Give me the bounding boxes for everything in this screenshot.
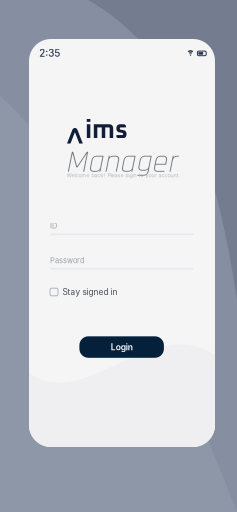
staticText: Manager bbox=[65, 142, 177, 183]
button[interactable]: Login bbox=[79, 336, 164, 358]
staticText: ims bbox=[85, 118, 128, 143]
staticText: Stay signed in bbox=[62, 287, 117, 297]
staticText: 2:35 bbox=[39, 47, 60, 59]
staticText: Login bbox=[111, 342, 133, 352]
staticText: Password bbox=[50, 256, 85, 265]
staticText: ID bbox=[50, 221, 57, 230]
staticText: Welcome back! Please login to your accou… bbox=[66, 172, 180, 178]
button[interactable]: Stay signed in bbox=[50, 286, 193, 298]
